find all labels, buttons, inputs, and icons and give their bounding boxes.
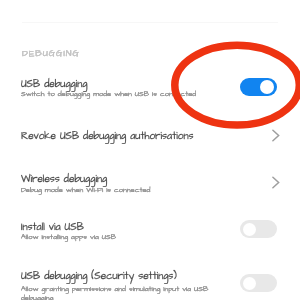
staticText: Switch to debugging mode when USB is con… bbox=[21, 89, 197, 99]
staticText: Debug mode when Wi-Fi is connected bbox=[21, 185, 151, 195]
button[interactable]: Switch, on bbox=[240, 78, 277, 96]
button[interactable]: Install via USB bbox=[0, 213, 300, 249]
staticText: Allow granting permissions and simulatin… bbox=[21, 284, 209, 294]
staticText: Wireless debugging bbox=[21, 172, 108, 186]
staticText: Wireless debugging bbox=[21, 172, 108, 186]
staticText: debugging bbox=[21, 293, 54, 300]
staticText: Debug mode when Wi-Fi is connected bbox=[21, 185, 151, 195]
staticText: USB debugging (Security settings) bbox=[21, 269, 177, 283]
button[interactable]: Open bbox=[267, 174, 283, 190]
staticText: Revoke USB debugging authorisations bbox=[21, 129, 194, 143]
staticText: USB debugging (Security settings) bbox=[21, 269, 177, 283]
button[interactable]: USB debugging (Security settings) bbox=[0, 261, 300, 300]
staticText: USB debugging bbox=[21, 77, 88, 91]
staticText: Install via USB bbox=[21, 220, 84, 234]
button[interactable]: Switch, off bbox=[240, 274, 277, 292]
staticText: DEBUGGING bbox=[22, 47, 80, 60]
staticText: Revoke USB debugging authorisations bbox=[21, 129, 194, 143]
button[interactable]: Switch, off bbox=[240, 220, 277, 238]
staticText: debugging bbox=[21, 293, 54, 300]
staticText: DEBUGGING bbox=[22, 47, 80, 60]
button[interactable]: Wireless debugging bbox=[0, 165, 300, 201]
button[interactable]: Open bbox=[267, 127, 283, 143]
button[interactable]: Revoke USB debugging authorisations bbox=[0, 120, 300, 152]
staticText: Install via USB bbox=[21, 220, 84, 234]
staticText: Allow installing apps via USB bbox=[21, 232, 117, 242]
button[interactable]: USB debugging bbox=[0, 70, 300, 104]
staticText: Allow installing apps via USB bbox=[21, 232, 117, 242]
staticText: USB debugging bbox=[21, 77, 88, 91]
staticText: Switch to debugging mode when USB is con… bbox=[21, 89, 197, 99]
staticText: Allow granting permissions and simulatin… bbox=[21, 284, 209, 294]
